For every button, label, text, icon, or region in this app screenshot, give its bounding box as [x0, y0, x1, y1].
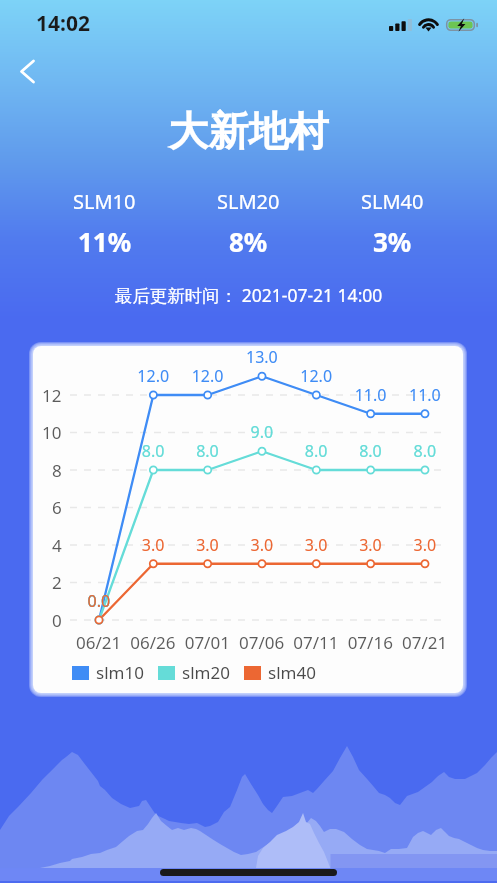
- button[interactable]: slm40: [244, 661, 316, 684]
- staticText: SLM20: [217, 188, 280, 215]
- button[interactable]: slm20: [158, 661, 230, 684]
- staticText: 11%: [78, 224, 132, 259]
- staticText: 14:02: [36, 9, 90, 38]
- button[interactable]: SLM40: [320, 188, 464, 259]
- staticText: 3%: [373, 224, 412, 259]
- staticText: slm40: [268, 661, 316, 684]
- staticText: slm20: [182, 661, 230, 684]
- staticText: 最后更新时间： 2021-07-21 14:00: [0, 283, 497, 307]
- staticText: SLM10: [73, 188, 136, 215]
- staticText: slm10: [96, 661, 144, 684]
- button[interactable]: slm10: [72, 661, 144, 684]
- staticText: 大新地村: [0, 106, 497, 156]
- staticText: 8%: [229, 224, 268, 259]
- button[interactable]: Back: [5, 49, 49, 93]
- button[interactable]: SLM10: [33, 188, 176, 259]
- staticText: SLM40: [361, 188, 424, 215]
- button[interactable]: SLM20: [176, 188, 320, 259]
